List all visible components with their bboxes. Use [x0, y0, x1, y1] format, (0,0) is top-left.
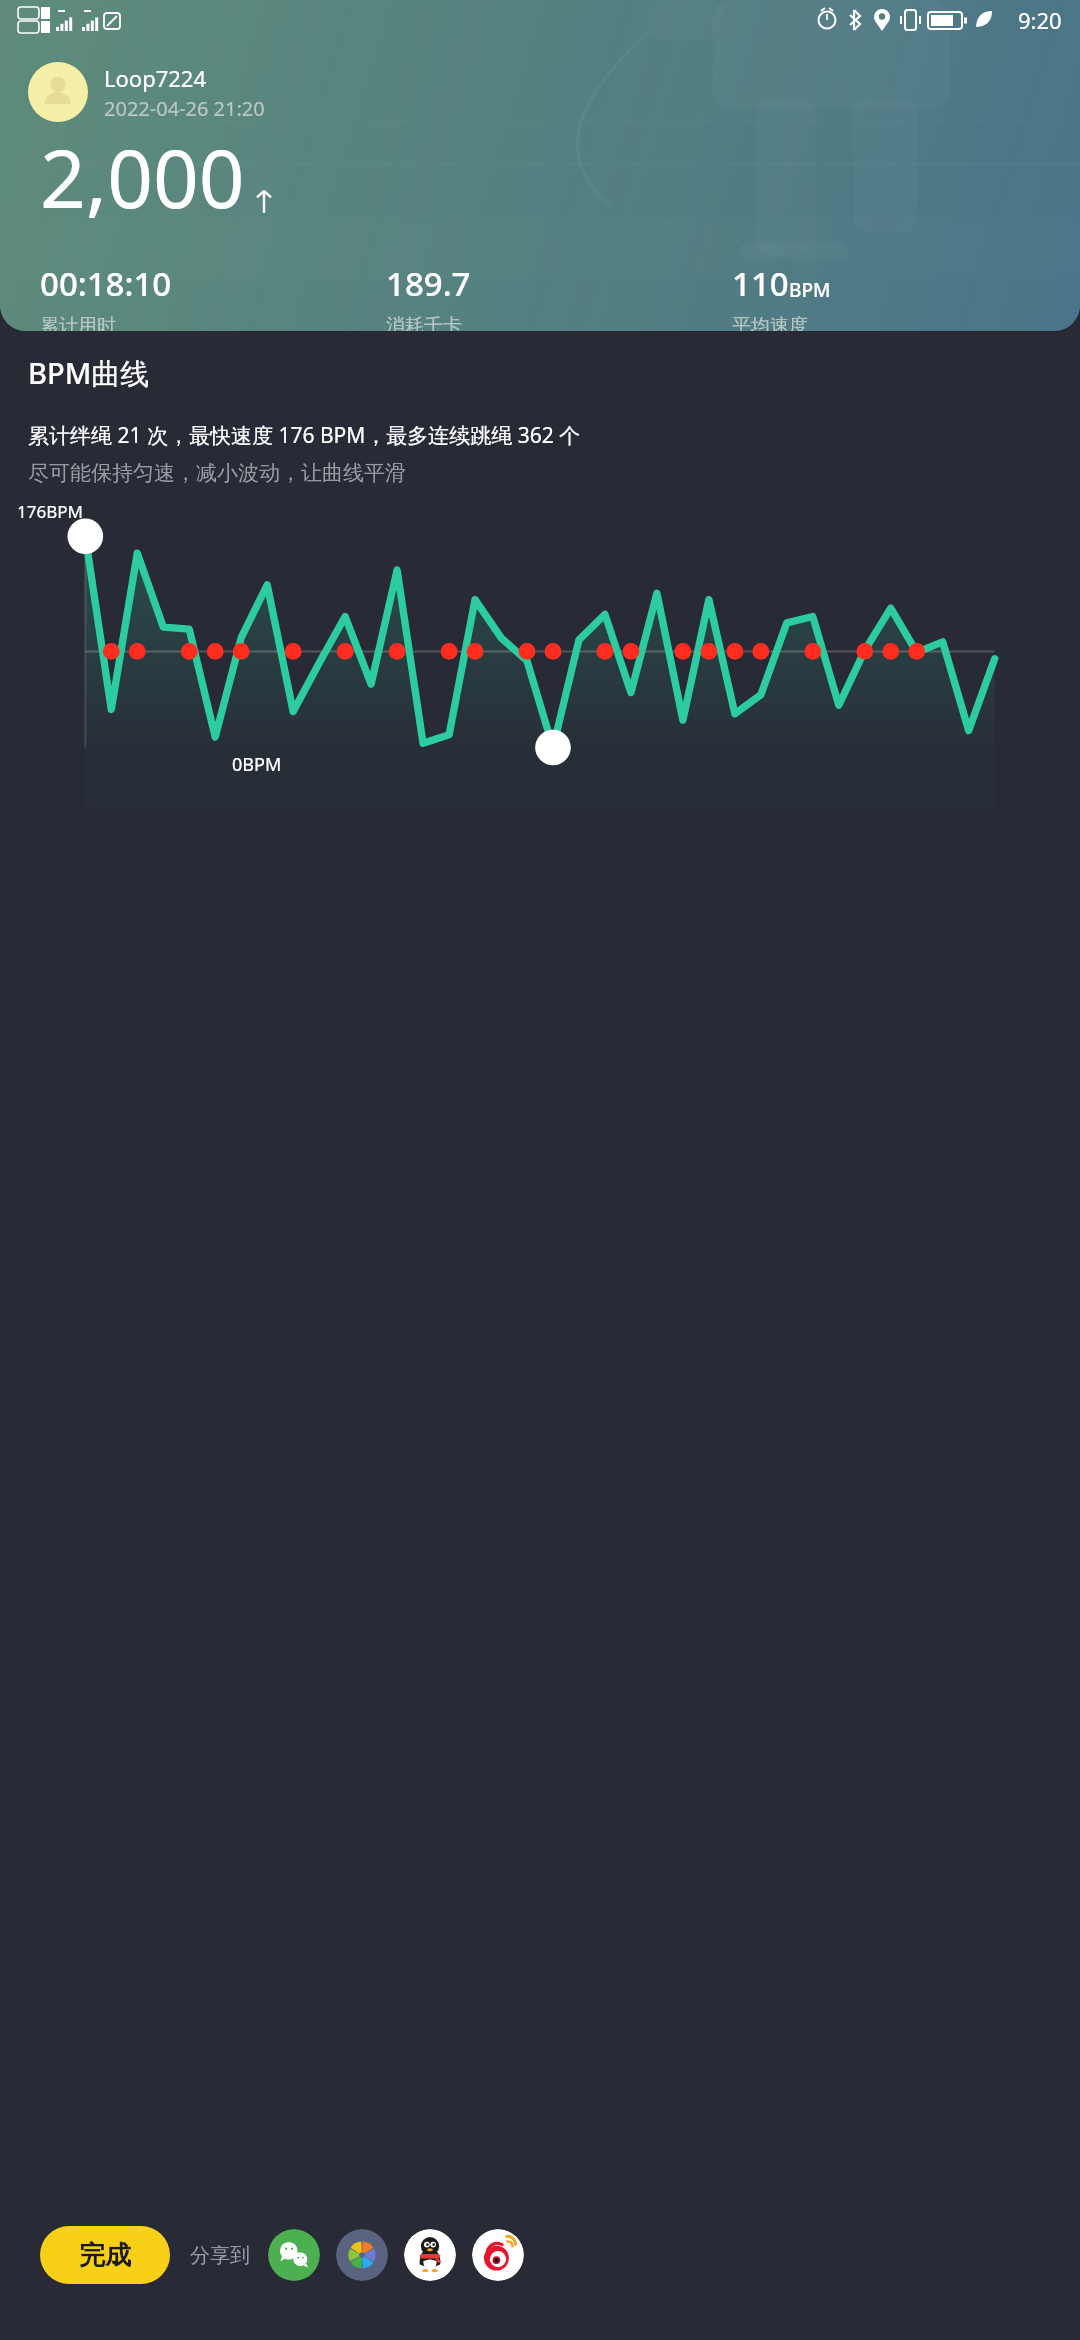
- button[interactable]: Loop7224: [28, 62, 265, 122]
- button[interactable]: QQ: [404, 2229, 456, 2281]
- staticText: 110: [732, 261, 789, 306]
- staticText: 2,000: [40, 122, 245, 231]
- staticText: Loop7224: [104, 63, 207, 93]
- staticText: 176BPM: [17, 500, 83, 523]
- button[interactable]: WeChat: [268, 2229, 320, 2281]
- staticText: 00:18:10: [40, 261, 172, 306]
- staticText: 累计绊绳 21 次，最快速度 176 BPM，最多连续跳绳 362 个: [28, 421, 581, 450]
- button[interactable]: Moments: [336, 2229, 388, 2281]
- staticText: 0BPM: [232, 752, 282, 777]
- staticText: 尽可能保持匀速，减小波动，让曲线平滑: [28, 460, 406, 486]
- staticText: 完成: [79, 2239, 131, 2272]
- staticText: 2022-04-26 21:20: [104, 95, 265, 122]
- staticText: 9:20: [1018, 5, 1062, 35]
- button[interactable]: Weibo: [472, 2229, 524, 2281]
- staticText: 分享到: [190, 2243, 250, 2268]
- staticText: 189.7: [386, 261, 471, 306]
- staticText: 平均速度: [732, 314, 808, 331]
- staticText: 消耗千卡: [386, 314, 462, 331]
- button[interactable]: 完成: [40, 2226, 170, 2284]
- staticText: 累计用时: [40, 314, 116, 331]
- staticText: BPM: [789, 277, 831, 303]
- staticText: BPM曲线: [28, 353, 150, 393]
